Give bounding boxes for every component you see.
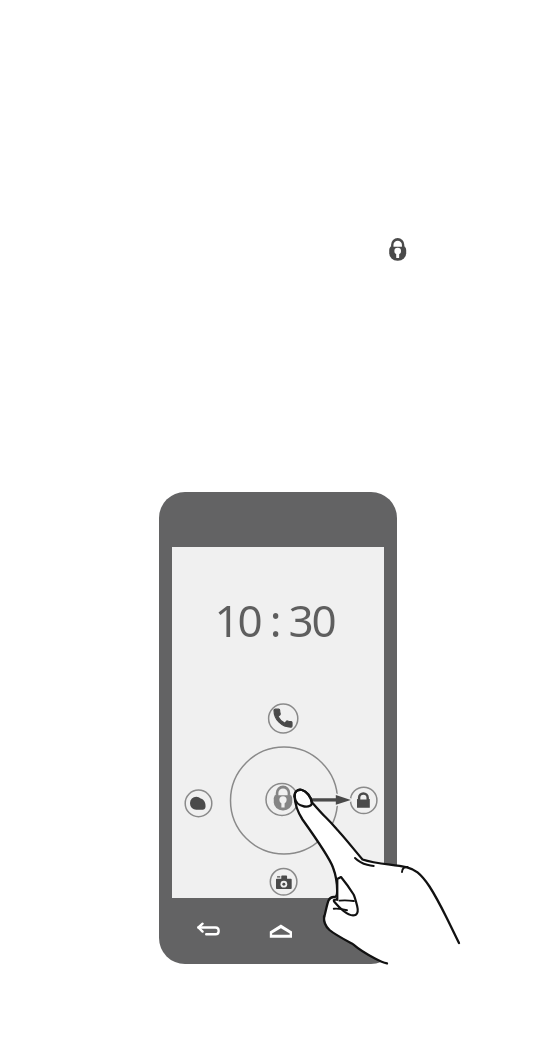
button[interactable]: Back	[185, 907, 232, 954]
button[interactable]: Camera	[255, 853, 312, 910]
button[interactable]: Home	[257, 907, 304, 954]
button[interactable]: Unlock	[335, 772, 392, 829]
button[interactable]: Call	[255, 690, 312, 747]
button[interactable]: Lock, swipe right to unlock	[254, 771, 311, 828]
button[interactable]: Messages	[170, 775, 227, 832]
button[interactable]: Screen lock	[374, 226, 422, 274]
